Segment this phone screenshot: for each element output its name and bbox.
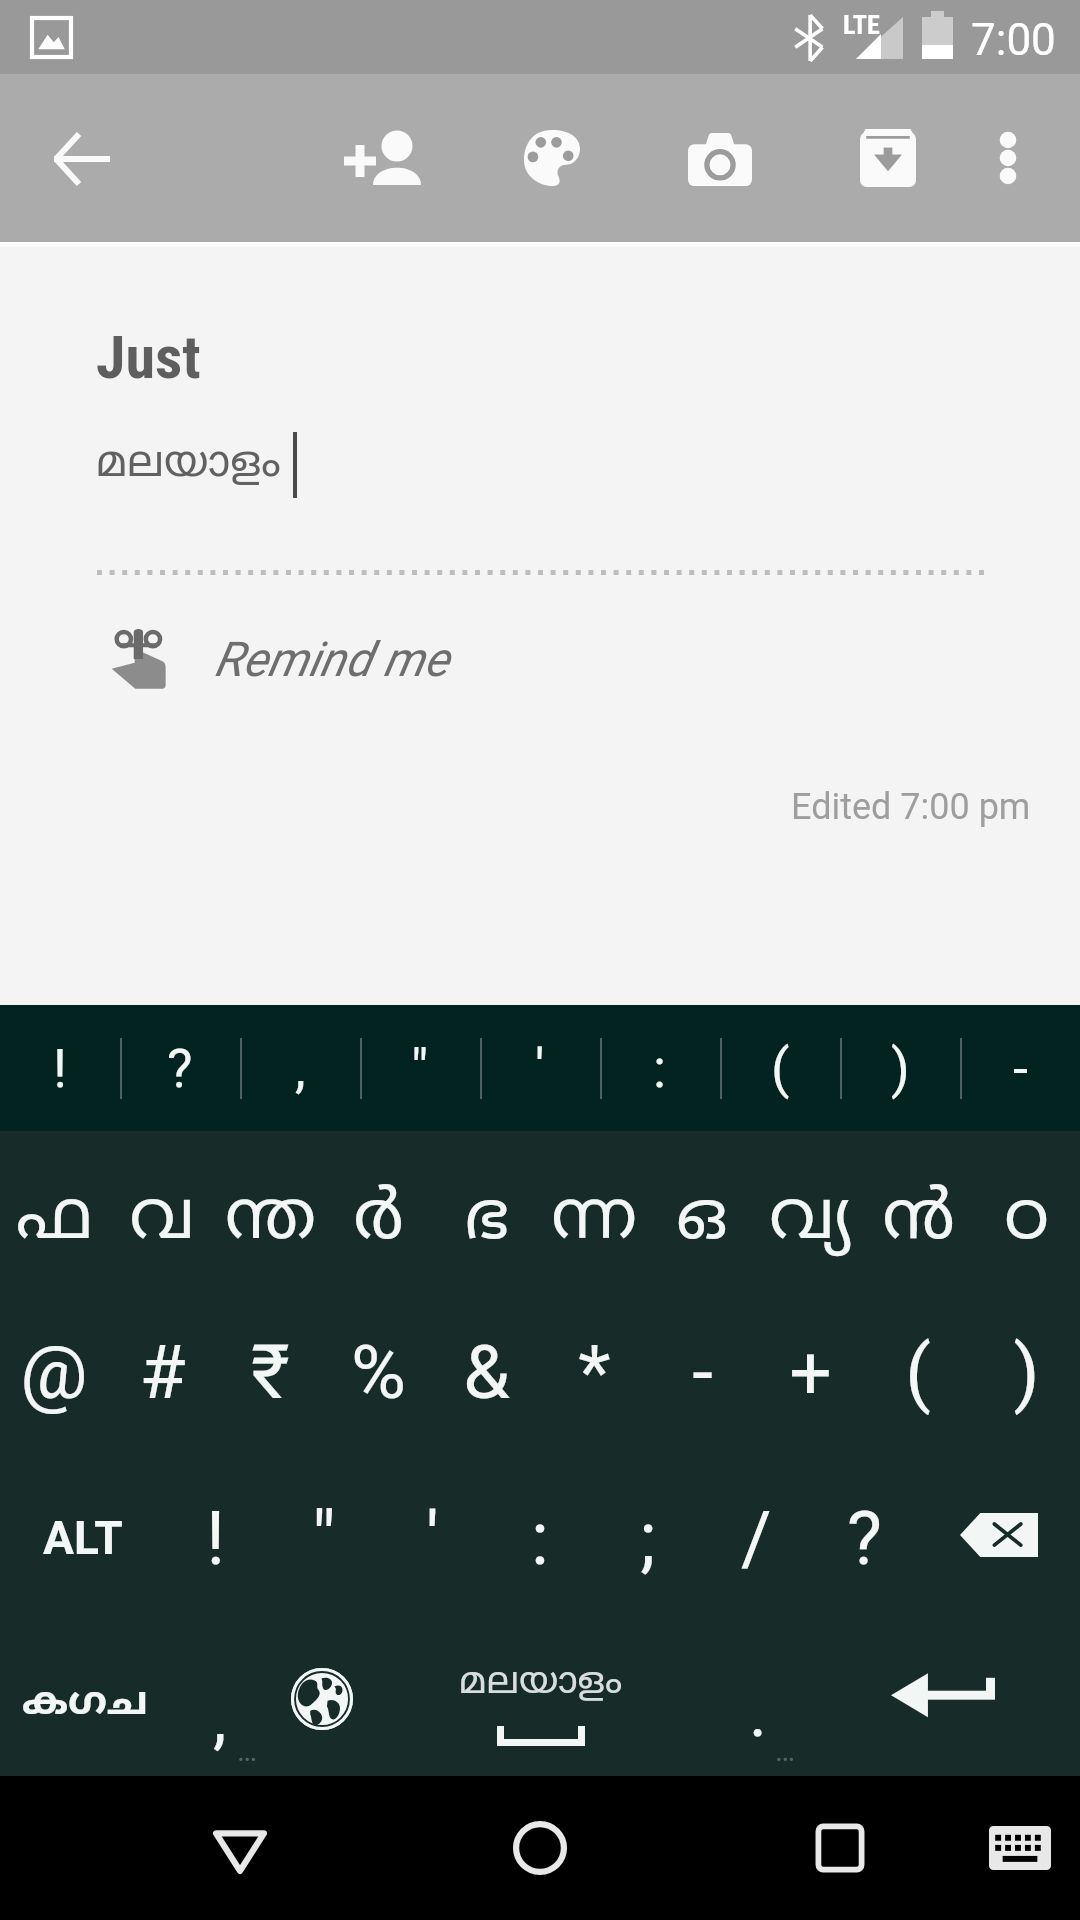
staticText: വ [129, 1179, 195, 1264]
button[interactable]: മലയാളം [96, 439, 281, 493]
staticText: : [653, 1037, 667, 1100]
staticText: ' [426, 1495, 439, 1582]
staticText: : [531, 1495, 549, 1582]
button[interactable]: ) [840, 1005, 960, 1131]
staticText: ഒ [676, 1179, 728, 1264]
button[interactable]: Switch language [270, 1615, 374, 1776]
staticText: - [1013, 1037, 1028, 1100]
staticText: ഫ [16, 1179, 93, 1264]
button[interactable]: ) [972, 1293, 1080, 1454]
button[interactable]: , [240, 1005, 360, 1131]
staticText: " [312, 1495, 336, 1582]
staticText: @ [20, 1328, 88, 1416]
button[interactable]: ' [480, 1005, 600, 1131]
button[interactable]: - [648, 1293, 756, 1454]
button[interactable]: ഫ [0, 1131, 108, 1293]
staticText: ) [891, 1037, 910, 1100]
button[interactable]: Archive [832, 74, 944, 242]
button[interactable]: " [270, 1454, 378, 1615]
staticText: ' [535, 1037, 545, 1100]
button[interactable]: Just [96, 322, 201, 392]
button[interactable]: ; [594, 1454, 702, 1615]
staticText: ALT [43, 1511, 123, 1565]
button[interactable]: ഒ [648, 1131, 756, 1293]
button[interactable]: ഭ [432, 1131, 540, 1293]
button[interactable]: Back [26, 74, 138, 242]
button[interactable]: കഗച [0, 1615, 170, 1776]
button[interactable]: Change colour [496, 74, 608, 242]
button[interactable]: # [108, 1293, 216, 1454]
staticText: ! [206, 1495, 226, 1582]
button[interactable]: : [486, 1454, 594, 1615]
button[interactable]: @ [0, 1293, 108, 1454]
button[interactable]: Choose input method [960, 1788, 1080, 1908]
button[interactable]: * [540, 1293, 648, 1454]
staticText: ! [53, 1037, 67, 1100]
staticText: കഗച [22, 1679, 148, 1729]
staticText: വ്യ [769, 1179, 851, 1264]
staticText: ( [771, 1037, 790, 1100]
button[interactable]: ALT [0, 1454, 162, 1615]
button[interactable]: + [756, 1293, 864, 1454]
button[interactable]: ₹ [216, 1293, 324, 1454]
staticText: # [139, 1328, 186, 1416]
button[interactable]: ( [864, 1293, 972, 1454]
button[interactable]: ന്ത [216, 1131, 324, 1293]
button[interactable]: ! [162, 1454, 270, 1615]
staticText: & [463, 1328, 510, 1416]
button[interactable]: ഠ [972, 1131, 1080, 1293]
staticText: ന്ന [551, 1179, 637, 1264]
staticText: ഭ [464, 1179, 509, 1264]
button[interactable]: Back [180, 1788, 300, 1908]
staticText: മലയാളം [459, 1660, 623, 1707]
staticText: . [749, 1673, 767, 1753]
button[interactable]: More options [952, 74, 1064, 242]
button[interactable]: Backspace [918, 1454, 1080, 1615]
button[interactable]: Remind me [108, 619, 449, 699]
button[interactable]: . [708, 1615, 808, 1776]
staticText: 7:00 [971, 14, 1056, 66]
staticText: ₹ [251, 1328, 290, 1416]
staticText: … [237, 1733, 258, 1768]
button[interactable]: Add collaborator [326, 74, 438, 242]
button[interactable]: " [360, 1005, 480, 1131]
button[interactable]: , [170, 1615, 270, 1776]
button[interactable]: ൻ [864, 1131, 972, 1293]
button[interactable]: ( [720, 1005, 840, 1131]
staticText: % [351, 1328, 406, 1416]
staticText: … [775, 1733, 796, 1768]
button[interactable]: വ [108, 1131, 216, 1293]
staticText: , [213, 1678, 227, 1758]
button[interactable]: : [600, 1005, 720, 1131]
button[interactable]: - [960, 1005, 1080, 1131]
button[interactable]: ന്ന [540, 1131, 648, 1293]
button[interactable]: ! [0, 1005, 120, 1131]
staticText: ർ [353, 1179, 404, 1264]
button[interactable]: വ്യ [756, 1131, 864, 1293]
button[interactable]: ' [378, 1454, 486, 1615]
staticText: - [692, 1328, 713, 1416]
staticText: , [295, 1037, 306, 1100]
staticText: * [578, 1328, 611, 1416]
button[interactable]: & [432, 1293, 540, 1454]
button[interactable]: Recents [780, 1788, 900, 1908]
staticText: Remind me [214, 631, 449, 687]
button[interactable]: / [702, 1454, 810, 1615]
staticText: / [741, 1495, 772, 1582]
button[interactable]: ? [120, 1005, 240, 1131]
button[interactable]: Enter [808, 1615, 1080, 1776]
button[interactable]: ർ [324, 1131, 432, 1293]
button[interactable]: Home [480, 1788, 600, 1908]
staticText: ൻ [882, 1179, 955, 1264]
staticText: ന്ത [225, 1179, 316, 1264]
staticText: Edited 7:00 pm [791, 786, 1031, 828]
staticText: + [789, 1328, 832, 1416]
staticText: ; [640, 1495, 656, 1582]
staticText: " [411, 1037, 429, 1100]
button[interactable]: മലയാളം [374, 1615, 708, 1776]
button[interactable]: % [324, 1293, 432, 1454]
button[interactable]: Take photo [664, 74, 776, 242]
staticText: ഠ [1004, 1179, 1049, 1264]
staticText: ? [167, 1037, 193, 1100]
button[interactable]: ? [810, 1454, 918, 1615]
